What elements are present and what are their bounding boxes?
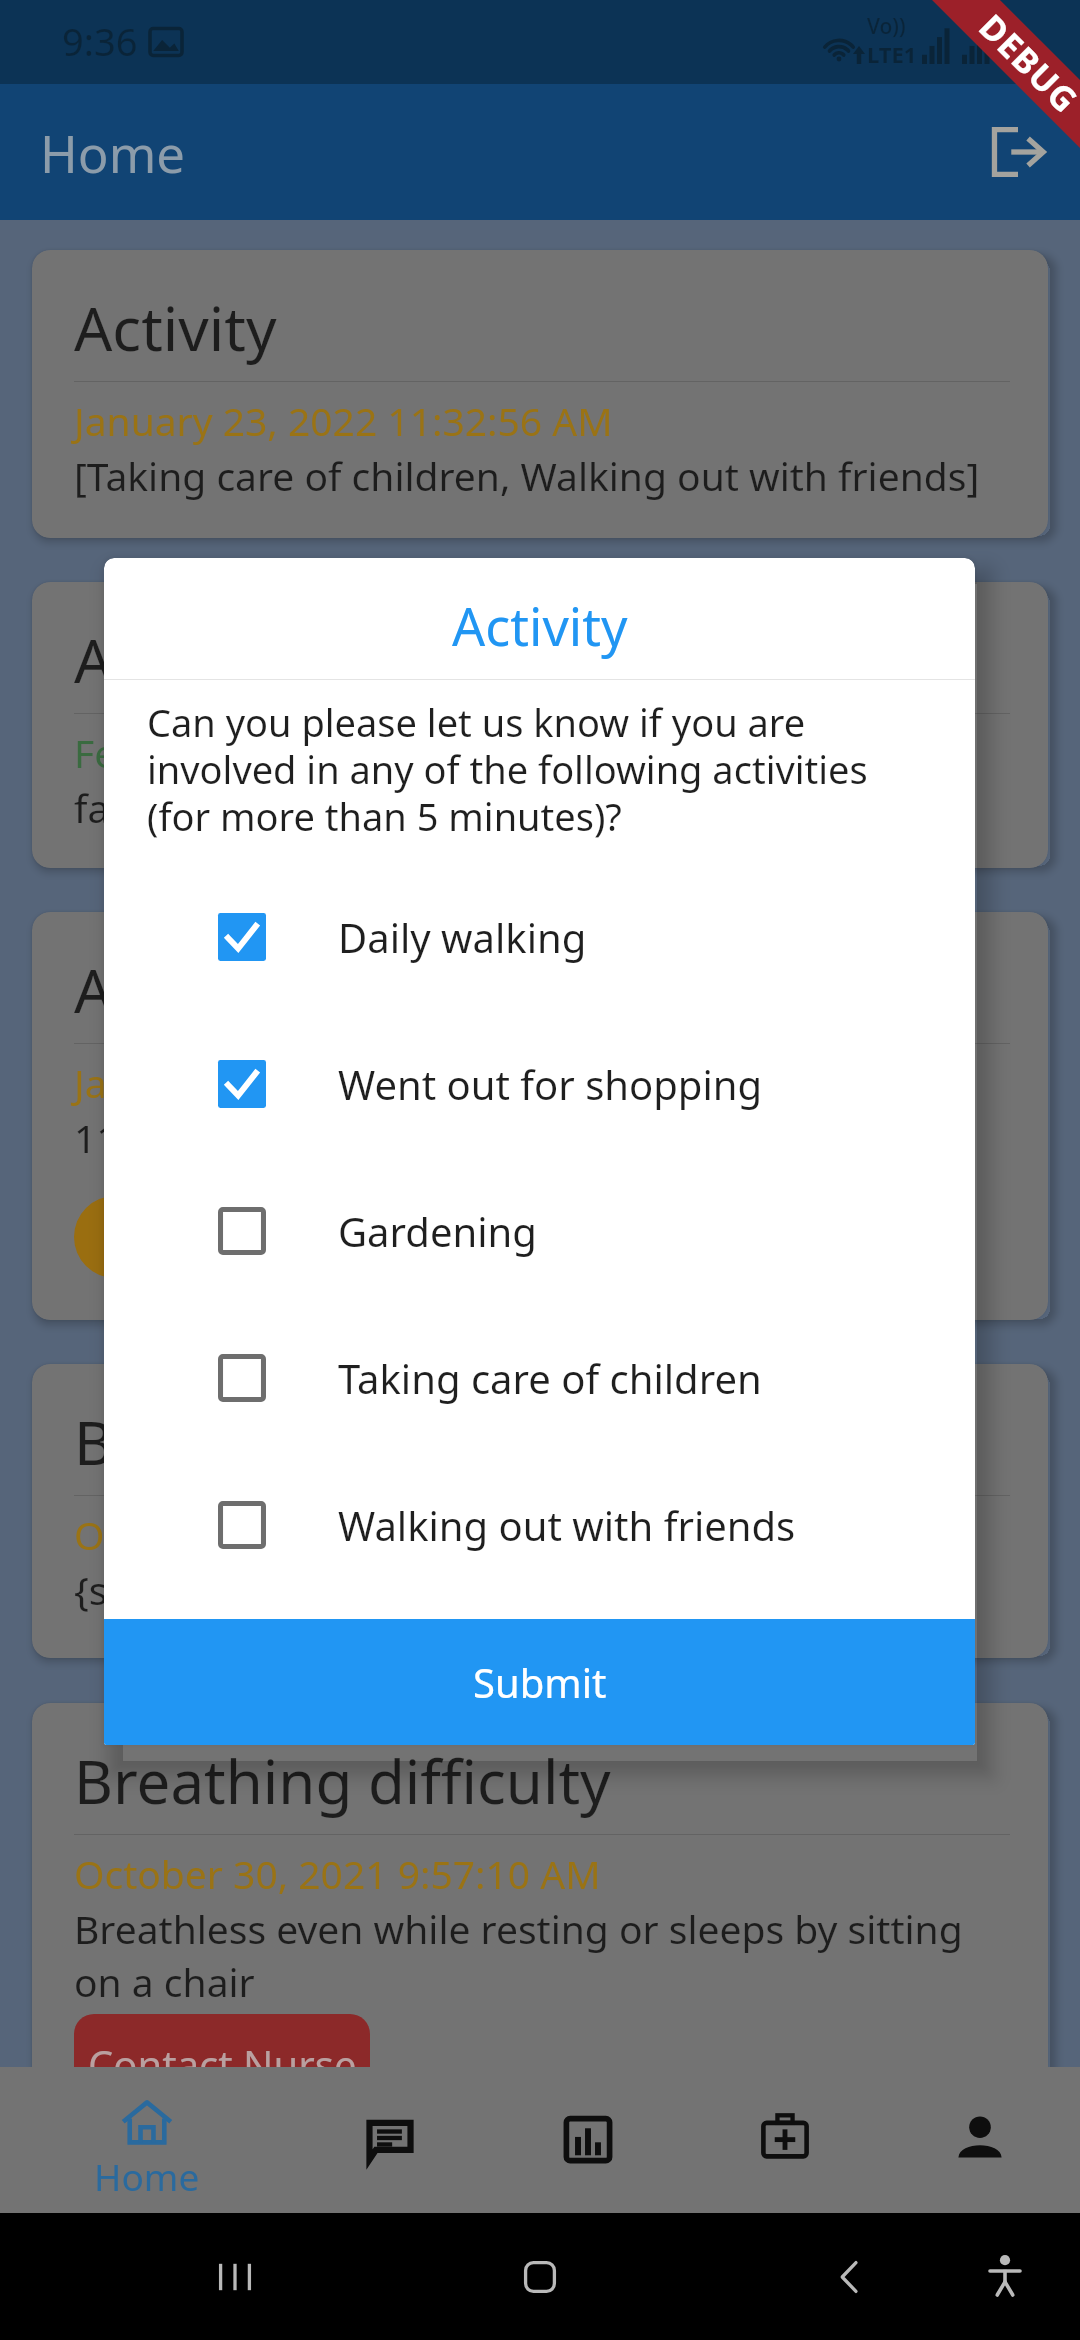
staticText: Activity [452,590,628,661]
button[interactable]: Went out for shopping [104,1010,975,1157]
button[interactable]: Appetite [32,582,1048,868]
staticText: February 3, 2022 11:21:02 AM [74,726,616,779]
button[interactable]: Submit [104,1619,975,1745]
button[interactable]: Profile [872,2067,1080,2213]
staticText: [Taking care of children, Walking out wi… [74,449,980,502]
staticText: Contact Nurse [88,2037,357,2091]
staticText: Vo)) [867,12,906,41]
staticText: Daily walking [338,910,587,964]
button[interactable]: Breathing difficulty [32,1703,1048,2123]
staticText: Home [40,118,186,187]
button[interactable]: Taking care of children [104,1304,975,1451]
staticText: October 30, 2021 9:57:10 AM [74,1847,601,1900]
staticText: January 23, 2022 [74,1056,378,1109]
button[interactable]: Activity [32,912,1048,1320]
button[interactable]: Reports [480,2067,696,2213]
button[interactable]: Daily walking [104,863,975,1010]
staticText: Went out for shopping [338,1057,763,1111]
staticText: Breathing difficulty [74,1740,611,1822]
staticText: October 30, 2021 9:58:02 AM [74,1508,601,1561]
staticText: January 23, 2022 11:32:56 AM [74,394,613,447]
staticText: Can you please let us know if you are in… [147,696,868,842]
button[interactable]: Care [677,2067,893,2213]
staticText: Body temperature [74,1401,589,1483]
button[interactable]: Body temperature [32,1364,1048,1658]
staticText: Activity [74,949,277,1031]
button[interactable]: Add new [74,1196,332,1278]
button[interactable]: Gardening [104,1157,975,1304]
staticText: Home [94,2151,200,2201]
staticText: fatigue [74,781,204,834]
staticText: DEBUG [970,4,1080,122]
button[interactable]: Home [39,2067,255,2213]
staticText: Activity [74,287,277,369]
staticText: Add new [126,1211,281,1263]
staticText: Submit [473,1655,607,1709]
staticText: 9:36 [62,15,138,67]
staticText: 11:32:56 AM [74,1111,300,1164]
staticText: {status: normal} [74,1563,368,1616]
button[interactable]: Log out [982,116,1054,188]
staticText: Walking out with friends [338,1498,796,1552]
button[interactable]: Contact Nurse [74,2014,370,2114]
staticText: LTE1 [867,39,917,69]
button[interactable]: Activity [32,250,1048,538]
staticText: Taking care of children [338,1351,762,1405]
staticText: Gardening [338,1204,537,1258]
staticText: Breathless even while resting or sleeps … [74,1902,963,1955]
staticText: Appetite [74,619,313,701]
staticText: on a chair [74,1955,255,2008]
button[interactable]: Messages [282,2067,498,2213]
button[interactable]: Walking out with friends [104,1451,975,1598]
